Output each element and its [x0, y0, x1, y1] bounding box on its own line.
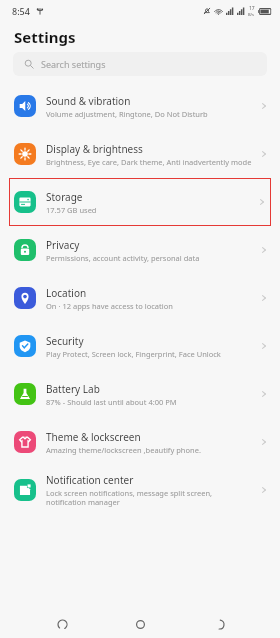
button[interactable]: Back — [202, 610, 236, 638]
staticText: Sound & vibration — [46, 94, 131, 108]
staticText: Storage — [46, 190, 83, 204]
button[interactable]: Battery Lab — [0, 370, 280, 418]
staticText: Lock screen notifications, message split… — [46, 488, 254, 507]
staticText: Privacy — [46, 238, 80, 252]
staticText: Settings — [14, 27, 76, 47]
button[interactable]: Notification center — [0, 466, 280, 514]
button[interactable]: Display & brightness — [0, 130, 280, 178]
button[interactable]: Search settings — [13, 52, 267, 76]
staticText: Amazing theme/lockscreen ,beautify phone… — [46, 445, 201, 455]
button[interactable]: Location — [0, 274, 280, 322]
staticText: Notification center — [46, 473, 134, 487]
staticText: Theme & lockscreen — [46, 430, 141, 444]
staticText: Brightness, Eye care, Dark theme, Anti i… — [46, 157, 252, 167]
staticText: Play Protect, Screen lock, Fingerprint, … — [46, 349, 221, 359]
staticText: Battery Lab — [46, 382, 100, 396]
staticText: Search settings — [41, 58, 106, 70]
staticText: On · 12 apps have access to location — [46, 301, 173, 311]
staticText: Display & brightness — [46, 142, 143, 156]
staticText: B/s — [248, 12, 255, 17]
button[interactable]: Home — [123, 610, 157, 638]
staticText: Volume adjustment, Ringtone, Do Not Dist… — [46, 109, 208, 119]
staticText: 17 — [249, 5, 255, 12]
button[interactable]: Sound & vibration — [0, 82, 280, 130]
button[interactable]: Privacy — [0, 226, 280, 274]
staticText: 17.57 GB used — [46, 205, 97, 215]
button[interactable]: Security — [0, 322, 280, 370]
staticText: Permissions, account activity, personal … — [46, 253, 200, 263]
staticText: Security — [46, 334, 84, 348]
button[interactable]: Theme & lockscreen — [0, 418, 280, 466]
staticText: Location — [46, 286, 87, 300]
staticText: 8:54 — [12, 5, 30, 17]
staticText: 87% - Should last until about 4:00 PM — [46, 397, 177, 407]
button[interactable]: Storage — [9, 178, 271, 226]
button[interactable]: Recents — [45, 610, 79, 638]
